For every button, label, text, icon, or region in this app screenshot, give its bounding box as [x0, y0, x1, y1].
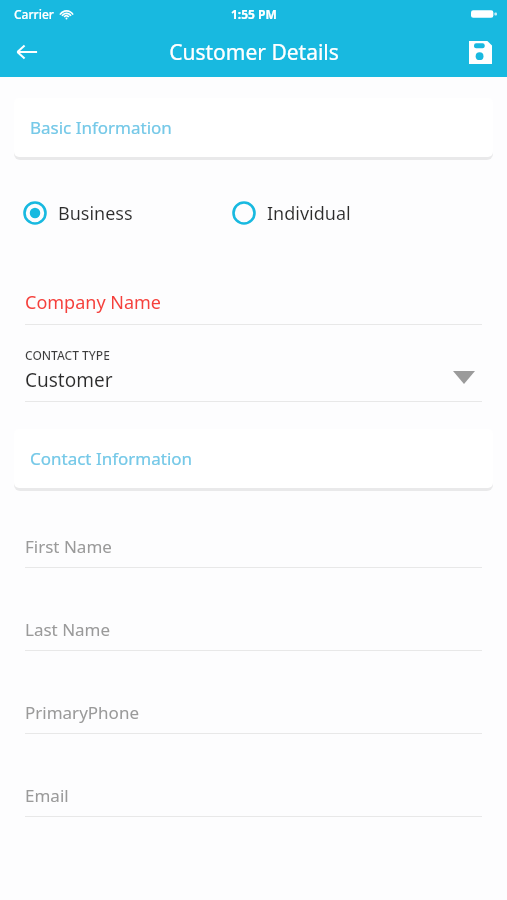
button[interactable]: Company Name: [25, 290, 482, 325]
staticText: Email: [25, 784, 69, 807]
button[interactable]: Basic Information: [14, 98, 493, 157]
button[interactable]: Save: [453, 27, 507, 77]
staticText: Basic Information: [30, 116, 172, 139]
button[interactable]: First Name: [25, 535, 482, 568]
button[interactable]: Individual: [231, 200, 351, 226]
staticText: PrimaryPhone: [25, 701, 139, 724]
staticText: Customer: [25, 367, 113, 393]
staticText: Customer Details: [169, 38, 339, 67]
staticText: CONTACT TYPE: [25, 347, 110, 363]
button[interactable]: Contact Information: [14, 429, 493, 488]
staticText: Business: [58, 201, 133, 226]
button[interactable]: PrimaryPhone: [25, 701, 482, 734]
staticText: Contact Information: [30, 447, 193, 470]
staticText: First Name: [25, 535, 112, 558]
staticText: Individual: [267, 201, 351, 226]
button[interactable]: Business: [22, 200, 133, 226]
button[interactable]: CONTACT TYPE: [25, 347, 482, 402]
staticText: Company Name: [25, 290, 162, 315]
button[interactable]: Email: [25, 784, 482, 817]
staticText: Last Name: [25, 618, 111, 641]
staticText: 1:55 PM: [231, 6, 277, 22]
staticText: Carrier: [14, 6, 54, 22]
button[interactable]: Back: [0, 27, 54, 77]
button[interactable]: Last Name: [25, 618, 482, 651]
